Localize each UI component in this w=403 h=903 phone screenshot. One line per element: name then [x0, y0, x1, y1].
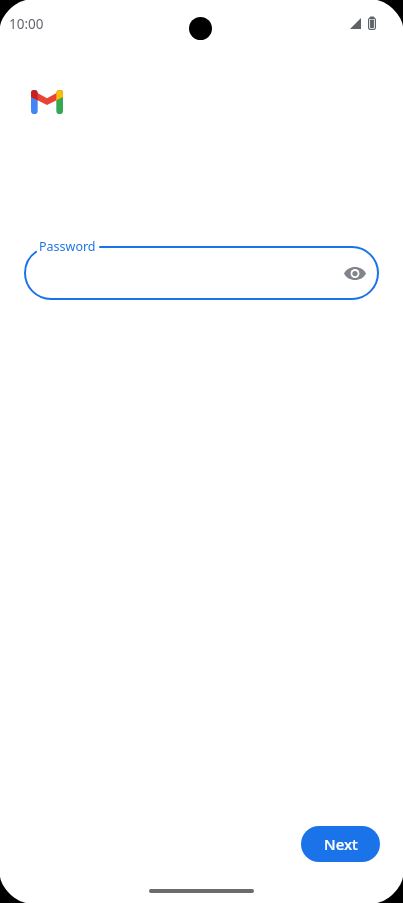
- staticText: Next: [324, 834, 358, 854]
- staticText: Password: [39, 238, 96, 255]
- staticText: 10:00: [9, 15, 44, 33]
- button[interactable]: Show password: [336, 254, 374, 292]
- button[interactable]: Next: [301, 826, 380, 862]
